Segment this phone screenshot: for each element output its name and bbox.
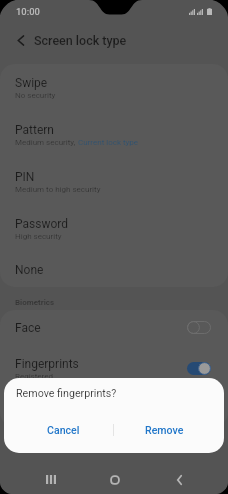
staticText: Remove <box>145 424 184 436</box>
staticText: Remove fingerprints? <box>16 387 117 400</box>
button[interactable]: Swipe <box>0 64 228 111</box>
staticText: Fingerprints <box>15 357 79 371</box>
staticText: No security <box>15 91 56 100</box>
button[interactable]: Face <box>0 310 228 345</box>
button[interactable]: Recent apps <box>31 464 71 494</box>
staticText: Face <box>15 321 41 335</box>
button[interactable]: Fingerprints <box>0 345 228 392</box>
button[interactable]: Remove <box>114 416 215 444</box>
button[interactable]: Pattern <box>0 111 228 158</box>
staticText: Registered <box>15 372 53 381</box>
staticText: Screen lock type <box>34 33 127 48</box>
staticText: 10:00 <box>16 6 40 17</box>
staticText: None <box>15 263 44 277</box>
staticText: PIN <box>15 170 35 184</box>
button[interactable]: PIN <box>0 158 228 205</box>
staticText: Medium security, <box>15 138 78 147</box>
staticText: High security <box>15 232 62 241</box>
button[interactable]: Home <box>95 464 135 494</box>
button[interactable]: None <box>0 252 228 287</box>
button[interactable]: Cancel <box>13 416 113 444</box>
staticText: Cancel <box>47 424 80 436</box>
staticText: Swipe <box>15 76 48 90</box>
staticText: Medium to high security <box>15 185 101 194</box>
staticText: Password <box>15 217 69 231</box>
button[interactable]: Navigate up <box>7 27 33 53</box>
button[interactable]: Password <box>0 205 228 252</box>
staticText: Current lock type <box>78 138 139 147</box>
button[interactable]: Back <box>159 464 199 494</box>
button[interactable]: Iris <box>0 392 228 427</box>
staticText: Pattern <box>15 123 54 137</box>
staticText: Biometrics <box>15 298 55 307</box>
